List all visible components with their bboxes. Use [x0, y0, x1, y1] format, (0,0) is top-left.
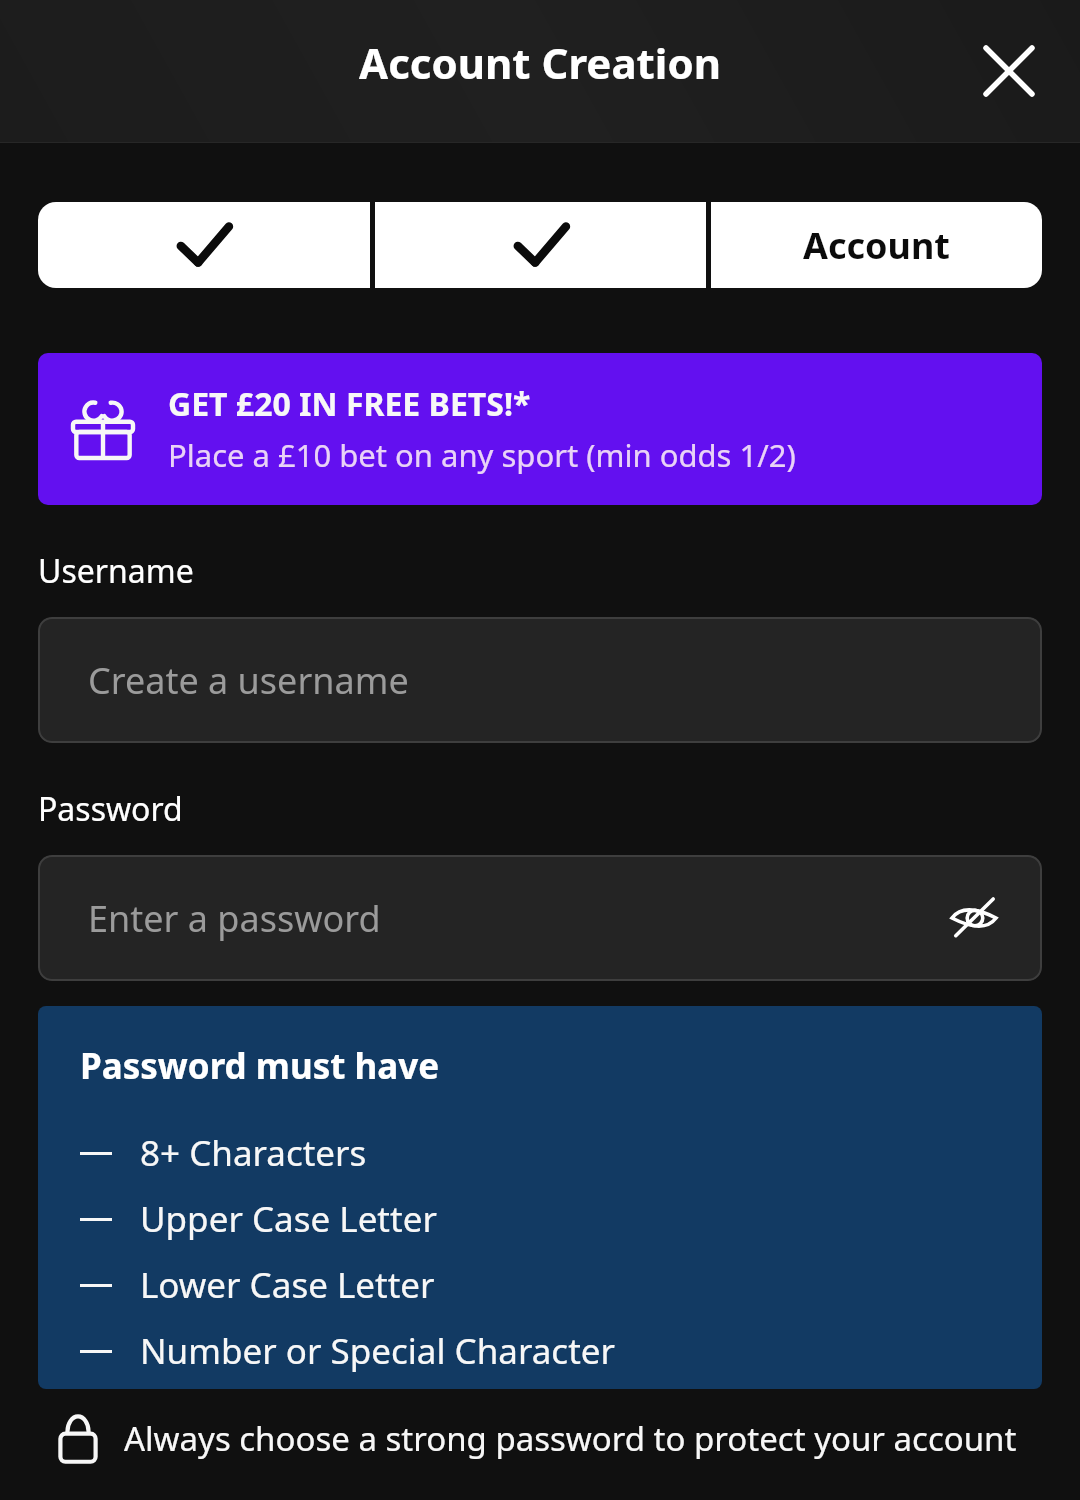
staticText: Account Creation: [0, 34, 1080, 91]
button[interactable]: Enter a password: [38, 855, 1042, 981]
button[interactable]: GET £20 IN FREE BETS!*: [38, 353, 1042, 505]
staticText: Username: [38, 549, 194, 593]
staticText: Upper Case Letter: [140, 1195, 437, 1243]
button[interactable]: Close: [971, 33, 1047, 109]
staticText: Password must have: [80, 1042, 440, 1090]
staticText: Account: [803, 221, 950, 270]
button[interactable]: Account: [711, 202, 1042, 288]
staticText: Lower Case Letter: [140, 1261, 435, 1309]
staticText: GET £20 IN FREE BETS!*: [168, 382, 531, 426]
button[interactable]: [375, 202, 706, 288]
button[interactable]: Create a username: [38, 617, 1042, 743]
button[interactable]: [38, 202, 370, 288]
staticText: Number or Special Character: [140, 1327, 615, 1375]
staticText: 8+ Characters: [140, 1129, 367, 1177]
staticText: Password: [38, 787, 183, 831]
button[interactable]: Show password: [942, 886, 1006, 950]
staticText: Enter a password: [88, 894, 381, 943]
staticText: Place a £10 bet on any sport (min odds 1…: [168, 434, 796, 476]
staticText: Always choose a strong password to prote…: [124, 1416, 1017, 1461]
staticText: Create a username: [88, 656, 409, 705]
